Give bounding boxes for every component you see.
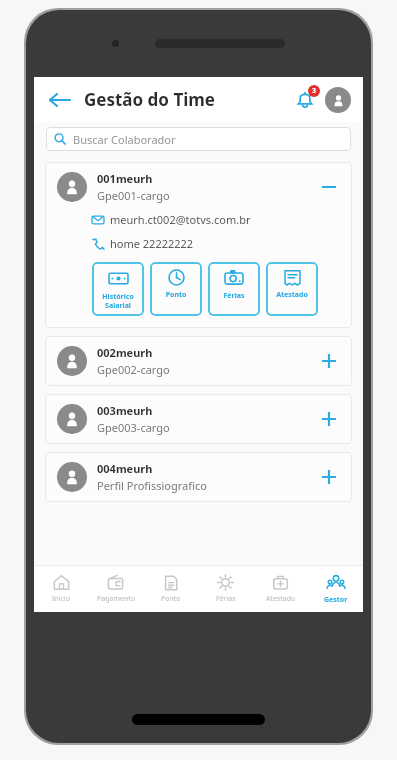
staticText: Férias — [216, 594, 236, 604]
staticText: home 22222222 — [110, 236, 194, 251]
staticText: Gpe003-cargo — [97, 420, 170, 435]
staticText: Gestão do Time — [84, 88, 216, 111]
staticText: 003meurh — [97, 403, 153, 418]
staticText: Buscar Colaborador — [73, 132, 176, 147]
other: Expand — [318, 466, 340, 488]
staticText: Perfil Profissiografico — [97, 478, 207, 493]
button[interactable]: Buscar Colaborador — [46, 127, 351, 151]
other: Collapse — [318, 176, 340, 198]
staticText: 001meurh — [97, 171, 153, 186]
staticText: Histórico Salarial — [92, 292, 144, 310]
staticText: 002meurh — [97, 345, 153, 360]
staticText: Gestor — [324, 595, 348, 605]
button[interactable]: 004meurh — [45, 452, 352, 502]
staticText: Início — [52, 594, 70, 604]
button[interactable]: Pagamento — [88, 566, 143, 612]
staticText: Gpe002-cargo — [97, 362, 170, 377]
button[interactable]: Ponto — [150, 262, 202, 316]
staticText: Ponto — [161, 594, 181, 604]
button[interactable]: Profile — [325, 87, 351, 113]
button[interactable]: 003meurh — [45, 394, 352, 444]
button[interactable]: 002meurh — [45, 336, 352, 386]
button[interactable]: Férias — [198, 566, 253, 612]
button[interactable]: Notifications — [291, 86, 319, 114]
other: Expand — [318, 408, 340, 430]
staticText: Ponto — [150, 290, 202, 300]
staticText: Atestado — [266, 594, 296, 604]
staticText: 004meurh — [97, 461, 153, 476]
button[interactable]: Gestor — [308, 566, 363, 612]
button[interactable]: Início — [34, 566, 88, 612]
staticText: Pagamento — [97, 594, 135, 604]
staticText: 3 — [312, 86, 317, 96]
button[interactable]: Férias — [208, 262, 260, 316]
staticText: meurh.ct002@totvs.com.br — [110, 212, 251, 227]
other: Expand — [318, 350, 340, 372]
staticText: Férias — [208, 291, 260, 301]
button[interactable]: Histórico Salarial — [92, 262, 144, 316]
button[interactable]: Atestado — [253, 566, 308, 612]
staticText: Atestado — [266, 290, 318, 300]
staticText: Gpe001-cargo — [97, 188, 170, 203]
button[interactable]: Ponto — [143, 566, 198, 612]
button[interactable]: 001meurh — [45, 162, 352, 212]
button[interactable]: Back — [46, 86, 74, 114]
button[interactable]: Atestado — [266, 262, 318, 316]
